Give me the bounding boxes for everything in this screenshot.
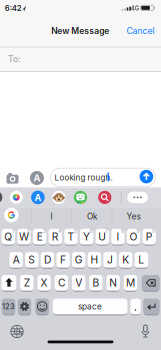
staticText: Y [83,230,90,243]
button[interactable]: N [106,274,120,292]
button[interactable]: Yes [113,206,153,226]
button[interactable]: To [0,47,161,71]
staticText: X [41,277,48,289]
staticText: 7 [105,228,108,234]
staticText: Looking rough. [54,173,112,183]
staticText: 123 [2,302,15,311]
staticText: D [44,254,51,266]
staticText: 6 [90,228,93,234]
button[interactable]: Return [143,298,160,315]
button[interactable]: A [9,251,23,269]
button[interactable]: Y [80,228,93,245]
staticText: K [122,254,129,266]
staticText: Yes [126,211,140,221]
button[interactable]: Settings [18,298,31,315]
button[interactable]: E [33,228,46,245]
staticText: I [50,211,52,221]
button[interactable]: Animoji [52,191,65,204]
staticText: N [109,277,117,289]
button[interactable]: G [72,251,85,269]
button[interactable]: M [124,274,137,292]
button[interactable]: S [25,251,39,269]
button[interactable]: More apps [127,192,148,203]
button[interactable]: O [127,228,140,245]
staticText: 5 [74,228,77,234]
staticText: To: [8,54,20,64]
button[interactable]: J [103,251,117,269]
button[interactable]: Google [4,208,19,222]
button[interactable]: W [17,228,31,245]
button[interactable]: Q [2,228,15,245]
staticText: O [130,230,138,243]
button[interactable]: Dictation [140,324,150,338]
button[interactable]: F [56,251,70,269]
staticText: Z [24,277,30,289]
button[interactable]: Z [20,274,34,292]
staticText: Ok [87,211,98,221]
button[interactable]: T [64,228,78,245]
staticText: A [13,254,20,266]
button[interactable]: Ok [74,206,112,226]
staticText: F [60,254,66,266]
staticText: S [28,254,35,266]
staticText: M [126,277,135,289]
staticText: R [52,230,59,243]
button[interactable]: H [88,251,101,269]
staticText: 3 [43,228,46,234]
button[interactable]: P [142,228,156,245]
staticText: E [37,230,43,243]
staticText: P [146,230,153,243]
staticText: 4 [58,228,61,234]
staticText: 1 [12,228,14,234]
button[interactable]: I [32,206,70,226]
button[interactable]: L [135,251,148,269]
staticText: H [90,254,98,266]
button[interactable]: U [95,228,109,245]
button[interactable]: Stickers [74,191,87,204]
staticText: I [116,230,119,243]
button[interactable]: Shift [2,274,16,292]
button[interactable]: Period [130,298,141,315]
button[interactable]: Search images [98,191,111,204]
staticText: New Message [51,26,109,36]
button[interactable]: Delete [142,274,160,292]
button[interactable]: V [72,274,85,292]
button[interactable]: D [41,251,54,269]
staticText: A [33,173,40,184]
staticText: Q [4,230,12,243]
staticText: G [75,254,83,266]
staticText: L [138,254,144,266]
button[interactable]: R [49,228,62,245]
staticText: 0 [152,228,155,234]
staticText: Cancel [127,25,155,36]
staticText: 2 [27,228,30,234]
button[interactable]: Emoji [35,298,49,315]
staticText: C [58,277,65,289]
staticText: 6:42 [5,3,22,13]
button[interactable]: Photos [10,191,23,204]
staticText: A [34,192,41,203]
button[interactable]: Message [50,168,155,186]
staticText: V [75,277,82,289]
button[interactable]: Cancel [121,23,161,39]
button[interactable]: C [55,274,68,292]
button[interactable]: 123 [2,298,15,315]
button[interactable]: I [111,228,125,245]
staticText: 8 [121,228,124,234]
button[interactable]: K [119,251,132,269]
staticText: T [67,230,74,243]
staticText: space [78,301,102,311]
button[interactable]: Send [140,170,153,183]
staticText: 9 [137,228,140,234]
staticText: U [98,230,106,243]
staticText: J [107,254,113,266]
button[interactable]: iMessage apps [30,171,44,185]
staticText: B [92,277,99,289]
button[interactable]: App Store [31,191,45,204]
button[interactable]: B [89,274,103,292]
button[interactable]: X [37,274,51,292]
button[interactable]: Camera [5,172,19,184]
staticText: 4G [131,5,139,12]
button[interactable]: Next keyboard [10,324,24,338]
button[interactable]: space [53,298,127,315]
